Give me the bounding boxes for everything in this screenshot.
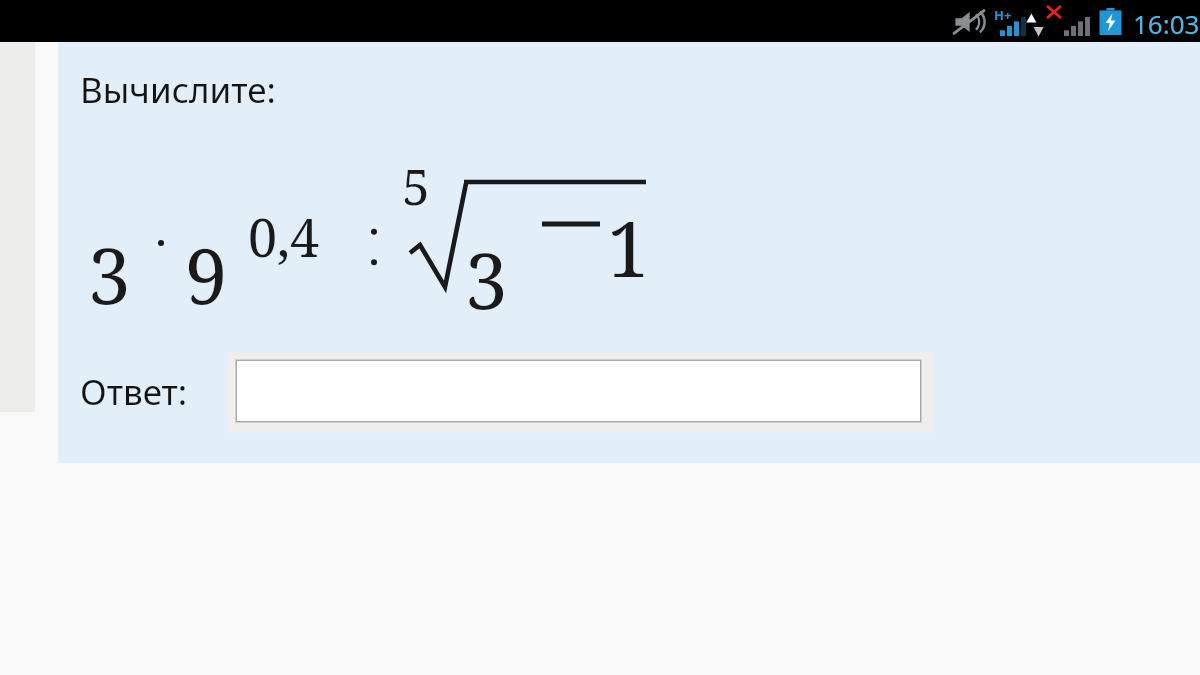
staticText: 9 bbox=[185, 223, 228, 327]
staticText: 3 bbox=[465, 228, 508, 332]
staticText: H+ bbox=[994, 6, 1012, 24]
staticText: 5 bbox=[402, 152, 430, 220]
staticText: 0,4 bbox=[248, 201, 320, 272]
staticText: Ответ: bbox=[80, 368, 188, 416]
staticText: Вычислите: bbox=[80, 66, 276, 114]
staticText: 1 bbox=[607, 196, 650, 300]
button[interactable]: Поле для ответа bbox=[235, 359, 922, 423]
staticText: 3 bbox=[88, 223, 131, 327]
staticText: 16:03 bbox=[1133, 6, 1200, 41]
